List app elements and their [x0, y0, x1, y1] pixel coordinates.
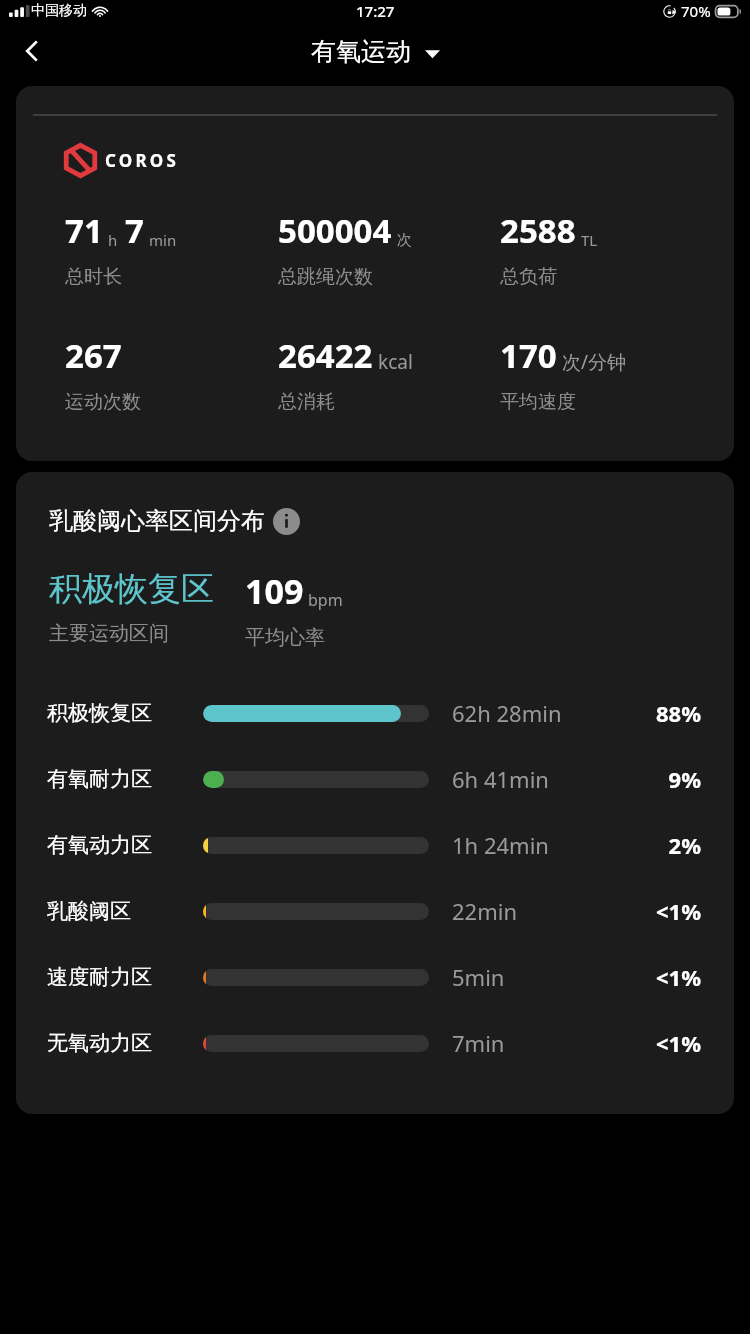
staticText: 次 [397, 231, 412, 250]
staticText: 速度耐力区 [47, 964, 152, 990]
staticText: 平均心率 [245, 625, 325, 650]
button[interactable]: Back [8, 27, 56, 75]
button[interactable]: 有氧耐力区 [16, 746, 734, 812]
button[interactable]: 乳酸阈心率区间分布 [49, 506, 300, 536]
staticText: 总负荷 [500, 265, 557, 289]
staticText: <1% [655, 1028, 701, 1058]
button[interactable]: 速度耐力区 [16, 944, 734, 1010]
staticText: 109 [245, 568, 304, 614]
staticText: 1h 24min [452, 830, 549, 860]
staticText: 有氧运动 [311, 36, 411, 67]
staticText: 170 [500, 333, 557, 378]
staticText: 9% [668, 764, 701, 794]
staticText: 5min [452, 962, 505, 992]
staticText: 乳酸阈区 [47, 898, 131, 924]
staticText: 有氧动力区 [47, 832, 152, 858]
staticText: 乳酸阈心率区间分布 [49, 506, 265, 536]
staticText: 2% [668, 830, 701, 860]
staticText: 有氧耐力区 [47, 766, 152, 792]
button[interactable]: 有氧动力区 [16, 812, 734, 878]
staticText: 平均速度 [500, 390, 576, 414]
other: Info [273, 508, 300, 535]
staticText: 总时长 [65, 265, 122, 289]
staticText: 17:27 [356, 1, 395, 21]
staticText: min [149, 230, 177, 250]
staticText: 22min [452, 896, 518, 926]
staticText: <1% [655, 896, 701, 926]
staticText: 无氧动力区 [47, 1030, 152, 1056]
staticText: 6h 41min [452, 764, 549, 794]
staticText: 中国移动 [31, 2, 87, 20]
staticText: 88% [655, 698, 701, 728]
staticText: 次/分钟 [562, 349, 627, 375]
staticText: kcal [378, 349, 413, 375]
staticText: 500004 [278, 208, 392, 253]
staticText: 主要运动区间 [49, 621, 169, 646]
staticText: 总消耗 [278, 390, 335, 414]
staticText: bpm [308, 589, 343, 611]
staticText: 26422 [278, 333, 373, 378]
staticText: 积极恢复区 [49, 568, 214, 610]
staticText: TL [581, 230, 598, 250]
staticText: 62h 28min [452, 698, 562, 728]
staticText: 运动次数 [65, 390, 141, 414]
staticText: 70% [681, 1, 711, 21]
staticText: 71 [65, 208, 103, 253]
staticText: 267 [65, 333, 122, 378]
staticText: 2588 [500, 208, 576, 253]
staticText: <1% [655, 962, 701, 992]
staticText: COROS [105, 149, 179, 172]
button[interactable]: 无氧动力区 [16, 1010, 734, 1076]
button[interactable]: 乳酸阈区 [16, 878, 734, 944]
staticText: h [108, 230, 118, 250]
staticText: 7 [125, 208, 144, 253]
staticText: 积极恢复区 [47, 700, 152, 726]
staticText: 总跳绳次数 [278, 265, 373, 289]
button[interactable]: 有氧运动 [311, 36, 440, 67]
staticText: 7min [452, 1028, 505, 1058]
button[interactable]: 积极恢复区 [16, 680, 734, 746]
